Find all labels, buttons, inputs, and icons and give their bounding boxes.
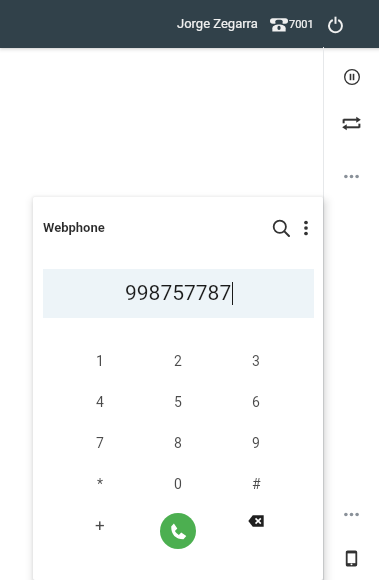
button[interactable]: Call [160,513,196,549]
button[interactable]: 7001 [270,15,314,33]
button[interactable]: 5 [139,381,217,422]
staticText: 7 [96,435,104,451]
staticText: 1 [96,353,104,369]
staticText: 0 [174,476,182,492]
staticText: * [97,476,104,492]
staticText: Webphone [43,220,105,235]
staticText: 7001 [289,18,314,31]
button[interactable]: * [61,463,139,504]
button[interactable]: 2 [139,340,217,381]
button[interactable]: 1 [61,340,139,381]
button[interactable]: More options [295,217,317,239]
button[interactable]: 6 [217,381,295,422]
staticText: 6 [252,394,260,410]
button[interactable]: Webphone [337,544,365,572]
staticText: 4 [96,394,104,410]
button[interactable]: # [217,463,295,504]
staticText: 5 [174,394,182,410]
button[interactable]: 3 [217,340,295,381]
staticText: + [95,515,105,535]
button[interactable]: More [337,500,365,528]
button[interactable]: 7 [61,422,139,463]
button[interactable]: Backspace [217,504,295,545]
staticText: 998757787 [125,281,232,306]
button[interactable]: Search [268,215,294,241]
staticText: Jorge Zegarra [177,16,258,31]
button[interactable]: + [61,504,139,545]
button[interactable]: More options [337,162,365,190]
staticText: 3 [252,353,260,369]
button[interactable]: 9 [217,422,295,463]
button[interactable]: 8 [139,422,217,463]
button[interactable]: 4 [61,381,139,422]
staticText: 2 [174,353,182,369]
button[interactable]: Hold [338,63,366,91]
button[interactable]: 0 [139,463,217,504]
staticText: 9 [252,435,260,451]
button[interactable]: Log out [323,12,347,36]
staticText: # [252,476,261,492]
staticText: 8 [174,435,182,451]
button[interactable]: Transfer [337,109,365,137]
